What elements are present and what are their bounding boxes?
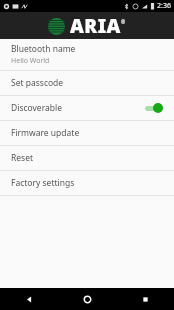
- staticText: Discoverable: [11, 102, 62, 114]
- button[interactable]: Discoverable: [0, 96, 174, 120]
- staticText: 2:36: [157, 1, 171, 11]
- staticText: Set passcode: [11, 77, 64, 89]
- staticText: Bluetooth name: [11, 43, 76, 55]
- button[interactable]: Factory settings: [0, 171, 174, 195]
- button[interactable]: Home: [58, 288, 116, 310]
- button[interactable]: Recent apps: [116, 288, 174, 310]
- button[interactable]: Reset: [0, 146, 174, 170]
- button[interactable]: Set passcode: [0, 71, 174, 95]
- staticText: Reset: [11, 152, 34, 164]
- staticText: Hello World: [11, 56, 50, 66]
- button[interactable]: Back: [0, 288, 58, 310]
- button[interactable]: Firmware update: [0, 121, 174, 145]
- button[interactable]: Bluetooth name: [0, 39, 174, 70]
- staticText: ARIA: [70, 13, 121, 39]
- staticText: ®: [121, 19, 126, 26]
- staticText: Firmware update: [11, 127, 80, 139]
- button[interactable]: Discoverable toggle: [144, 102, 164, 114]
- staticText: Factory settings: [11, 177, 75, 189]
